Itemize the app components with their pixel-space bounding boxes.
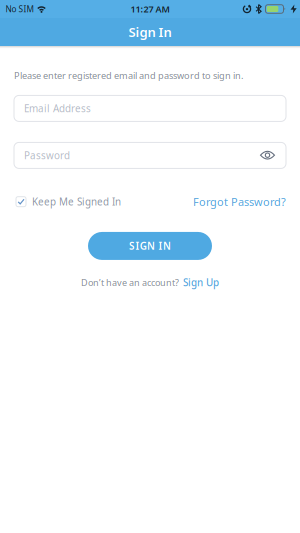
button[interactable]: Sign Up <box>183 276 219 289</box>
staticText: Password <box>24 149 70 162</box>
staticText: Don’t have an account? <box>81 276 179 288</box>
staticText: 11:27 AM <box>130 3 169 15</box>
staticText: No SIM <box>5 3 33 14</box>
button[interactable]: Show password <box>254 145 281 166</box>
staticText: SIGN IN <box>129 239 171 253</box>
staticText: Sign Up <box>183 276 219 289</box>
button[interactable]: Password <box>14 142 286 168</box>
button[interactable]: SIGN IN <box>88 232 212 260</box>
staticText: Sign In <box>128 23 171 41</box>
button[interactable]: Forgot Password? <box>193 194 286 209</box>
staticText: Forgot Password? <box>193 194 286 209</box>
staticText: Email Address <box>24 102 91 115</box>
button[interactable]: Email Address <box>14 95 286 121</box>
button[interactable]: Keep Me Signed In <box>16 195 121 208</box>
staticText: Keep Me Signed In <box>32 195 121 208</box>
staticText: Please enter registered email and passwo… <box>14 69 243 81</box>
